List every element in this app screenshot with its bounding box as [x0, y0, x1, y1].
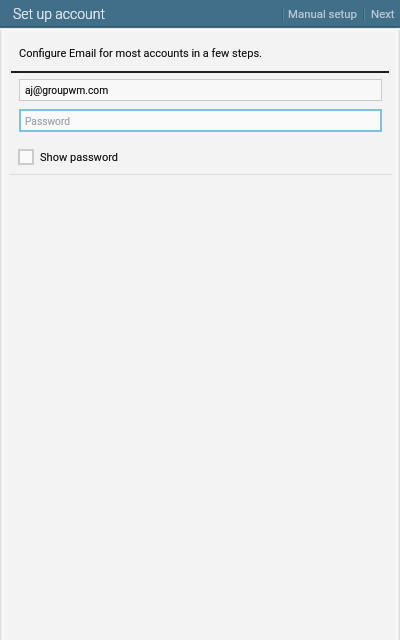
staticText: Next	[371, 7, 395, 20]
button[interactable]: Manual setup	[283, 0, 363, 26]
staticText: aj@groupwm.com	[25, 84, 109, 96]
staticText: aj@groupwm.com	[25, 84, 109, 96]
staticText: Manual setup	[288, 7, 357, 20]
staticText: Set up account	[13, 6, 105, 22]
staticText: Show password	[40, 151, 119, 164]
button[interactable]: Password	[19, 109, 382, 132]
staticText: Password	[25, 116, 70, 128]
staticText: Configure Email for most accounts in a f…	[19, 47, 262, 60]
staticText: Configure Email for most accounts in a f…	[19, 47, 262, 60]
staticText: Show password	[40, 151, 119, 164]
button[interactable]: aj@groupwm.com	[19, 79, 382, 101]
button[interactable]: Show password	[0, 145, 400, 169]
button[interactable]: Next	[364, 0, 400, 26]
